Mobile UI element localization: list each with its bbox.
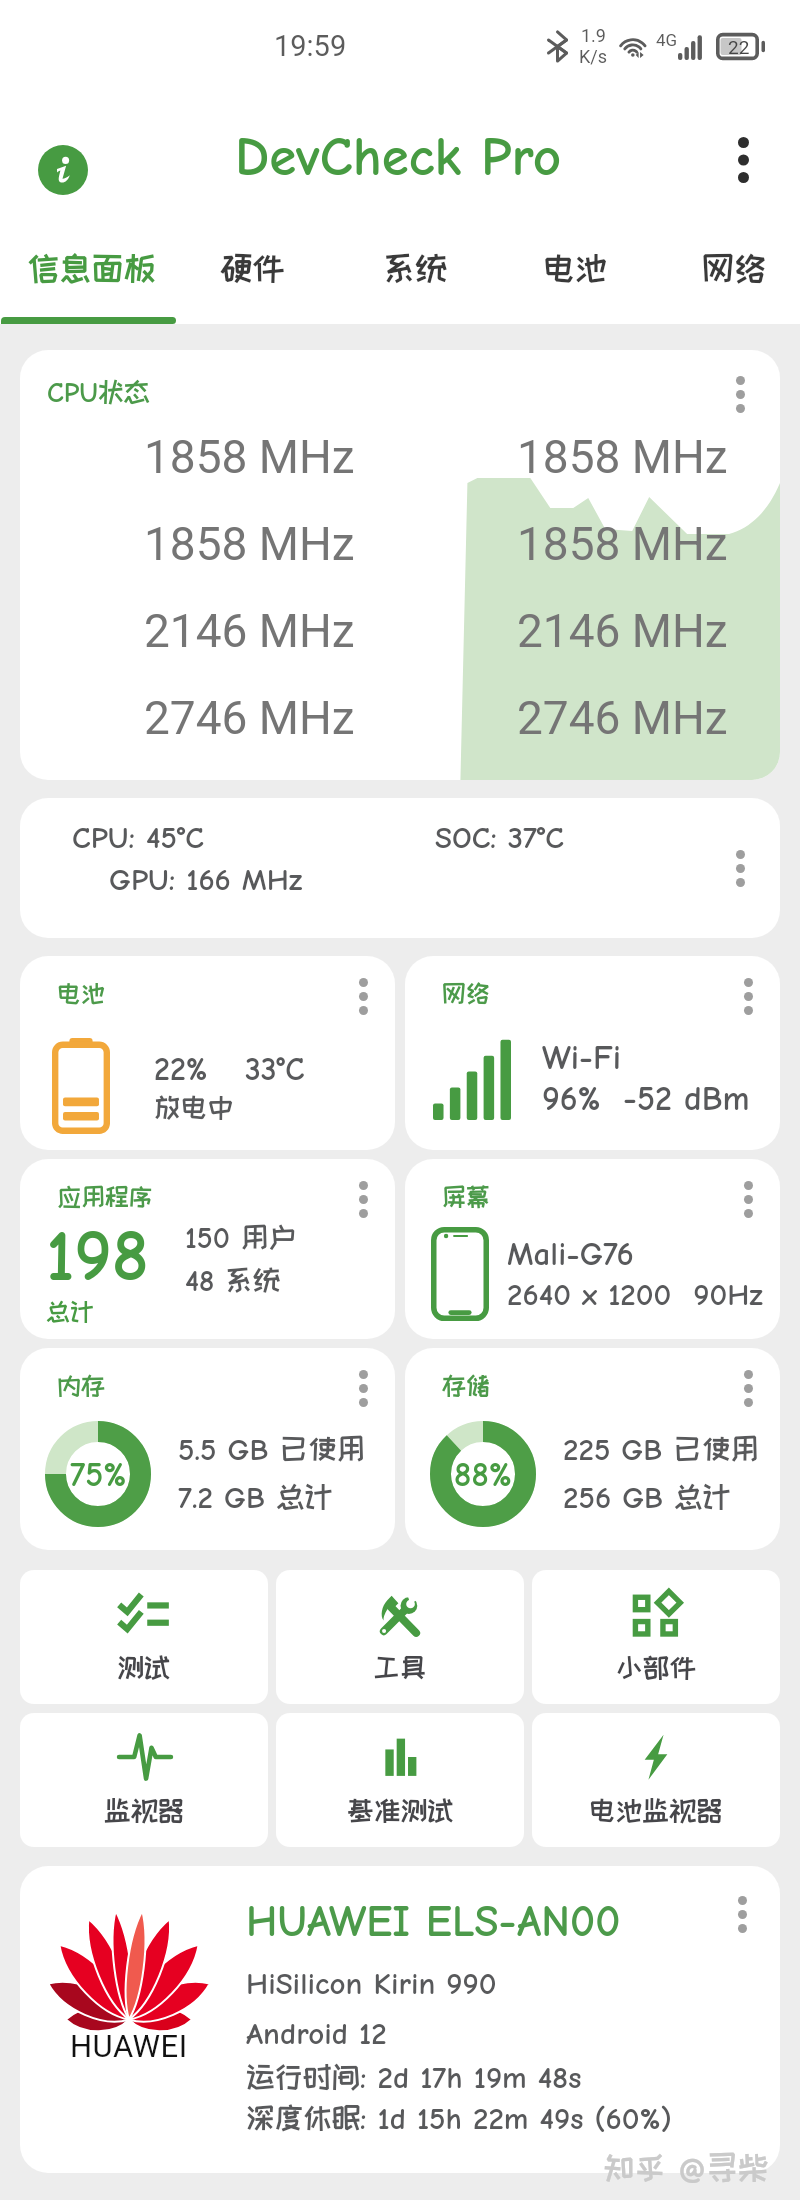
staticText: 88% [454,1455,512,1494]
staticText: 知乎 @寻柴 [603,2149,770,2188]
staticText: 1858 MHz [517,517,728,571]
staticText: 信息面板 [27,250,156,285]
staticText: 电池 [57,980,105,1006]
button[interactable]: Card menu [726,1177,770,1221]
staticText: 存储 [442,1372,490,1398]
staticText: 2746 MHz [144,691,355,745]
button[interactable]: Card menu [726,974,770,1018]
staticText: 4G [656,30,678,50]
button[interactable]: 电池 [495,220,655,324]
button[interactable]: More options [714,131,772,189]
staticText: CPU: 45°C [72,820,400,856]
staticText: 19:59 [274,29,347,63]
button[interactable]: 电池监视器 [532,1713,780,1847]
button[interactable]: Card menu [726,1366,770,1410]
button[interactable]: 监视器 [20,1713,268,1847]
button[interactable]: Card menu [718,372,762,416]
staticText: 5.5 GB 已使用 [178,1432,365,1468]
staticText: 网络 [442,980,490,1006]
staticText: HUAWEI ELS-AN00 [246,1896,621,1947]
staticText: Mali-G76 [507,1235,634,1273]
button[interactable]: 信息面板 [11,220,171,324]
staticText: 深度休眠: 1d 15h 22m 49s (60%) [246,2101,672,2137]
button[interactable]: HUAWEI [20,1866,780,2173]
staticText: SOC: 37°C [435,820,780,856]
staticText: 48 系统 [185,1264,281,1299]
button[interactable]: Card menu [720,1892,764,1936]
staticText: 22 [728,36,750,58]
staticText: 应用程序 [57,1183,153,1209]
staticText: HiSilicon Kirin 990 [246,1966,497,2002]
staticText: 1858 MHz [517,430,728,484]
staticText: 硬件 [220,250,285,285]
staticText: 测试 [117,1652,171,1681]
button[interactable]: 基准测试 [276,1713,524,1847]
staticText: 150 用户 [185,1221,296,1256]
button[interactable]: 电池 [20,956,395,1150]
button[interactable]: CPU: 45°C [20,798,780,938]
button[interactable]: App info [38,145,88,195]
staticText: GPU: 166 MHz [109,862,303,898]
staticText: 网络 [702,250,767,285]
staticText: 电池监视器 [589,1795,723,1824]
staticText: 系统 [383,250,448,285]
staticText: 工具 [373,1652,427,1681]
staticText: K/s [579,46,608,67]
staticText: 2146 MHz [144,604,355,658]
button[interactable]: 小部件 [532,1570,780,1704]
button[interactable]: 存储 [405,1348,780,1550]
staticText: 总计 [46,1298,94,1324]
staticText: 33°C [245,1051,305,1088]
staticText: 监视器 [104,1795,185,1824]
button[interactable]: 系统 [335,220,495,324]
staticText: 运行时间: 2d 17h 19m 48s [246,2060,582,2096]
button[interactable]: 测试 [20,1570,268,1704]
button[interactable]: 网络 [654,220,800,324]
staticText: 7.2 GB 总计 [178,1480,333,1516]
staticText: 96% [542,1079,601,1118]
staticText: 1858 MHz [144,517,355,571]
button[interactable]: 屏幕 [405,1159,780,1339]
button[interactable]: Card menu [341,1177,385,1221]
staticText: DevCheck Pro [235,125,562,188]
staticText: Wi-Fi [542,1038,621,1077]
staticText: 基准测试 [347,1795,454,1824]
button[interactable]: Card menu [341,1366,385,1410]
button[interactable]: 应用程序 [20,1159,395,1339]
staticText: 256 GB 总计 [563,1480,732,1516]
staticText: 小部件 [616,1652,697,1681]
staticText: HUAWEI [70,2028,188,2064]
staticText: -52 dBm [623,1079,750,1118]
staticText: 放电中 [154,1092,235,1121]
staticText: 2746 MHz [517,691,728,745]
button[interactable]: CPU状态 [20,350,780,780]
staticText: 75% [70,1455,127,1494]
staticText: 2146 MHz [517,604,728,658]
staticText: 1858 MHz [144,430,355,484]
staticText: CPU状态 [47,377,150,409]
staticText: Android 12 [246,2016,387,2052]
staticText: 2640 x 1200 90Hz [507,1277,767,1313]
button[interactable]: 工具 [276,1570,524,1704]
button[interactable]: 硬件 [172,220,332,324]
button[interactable]: 网络 [405,956,780,1150]
staticText: 1.9 [581,25,606,46]
button[interactable]: 内存 [20,1348,395,1550]
button[interactable]: Card menu [341,974,385,1018]
button[interactable]: Card menu [718,846,762,890]
staticText: 内存 [57,1372,105,1398]
staticText: 22% [154,1051,208,1088]
staticText: 198 [46,1215,149,1298]
staticText: 电池 [543,250,608,285]
staticText: 225 GB 已使用 [563,1432,759,1468]
staticText: 屏幕 [442,1183,490,1209]
